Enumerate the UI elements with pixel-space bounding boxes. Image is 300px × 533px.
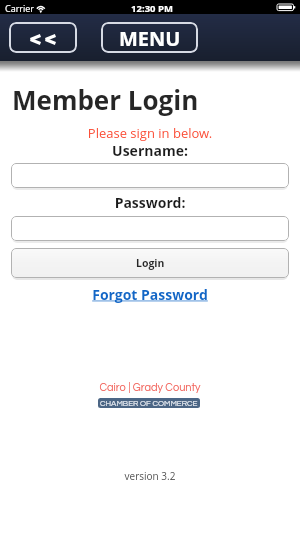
staticText: MENU [119, 25, 181, 52]
staticText: Username: [0, 141, 300, 160]
button[interactable] [11, 163, 289, 188]
staticText: Member Login [12, 82, 199, 117]
staticText: Password: [0, 193, 300, 212]
button[interactable]: Forgot Password [0, 285, 300, 304]
staticText: Carrier [5, 2, 35, 14]
button[interactable]: Back [9, 22, 77, 53]
staticText: Login [136, 256, 165, 270]
button[interactable]: MENU [101, 22, 198, 53]
staticText: CHAMBER OF COMMERCE [100, 399, 198, 407]
staticText: Please sign in below. [0, 124, 300, 142]
button[interactable]: Login [11, 248, 289, 278]
button[interactable] [11, 216, 289, 241]
staticText: 12:30 PM [2, 2, 300, 15]
staticText: Cairo | Grady County [0, 382, 300, 393]
staticText: version 3.2 [0, 469, 300, 483]
